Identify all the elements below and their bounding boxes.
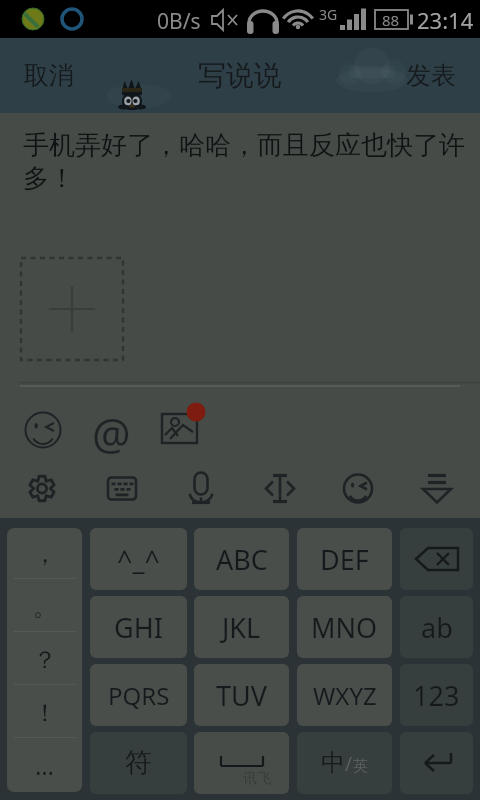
staticText: DEF (320, 541, 369, 578)
staticText: 0B/s (157, 7, 201, 36)
button[interactable]: Hide keyboard (407, 457, 467, 518)
button[interactable]: Voice input (171, 457, 231, 518)
button[interactable] (400, 528, 473, 590)
button[interactable]: ！ (7, 686, 82, 739)
staticText: ^_^ (117, 541, 160, 578)
staticText: PQRS (108, 679, 170, 712)
button[interactable]: PQRS (90, 664, 187, 726)
button[interactable]: JKL (194, 596, 289, 658)
button[interactable]: ab (400, 596, 473, 658)
staticText: 写说说 (198, 58, 282, 93)
button[interactable]: 讯飞 (194, 732, 289, 794)
button[interactable]: Emoji (328, 457, 388, 518)
button[interactable]: Emoji (18, 405, 68, 455)
button[interactable]: 发表 (382, 42, 480, 109)
button[interactable]: 中 (297, 732, 392, 794)
button[interactable]: ？ (7, 633, 82, 686)
button[interactable]: 取消 (0, 42, 98, 109)
staticText: 。 (33, 592, 57, 622)
button[interactable]: Add image (21, 258, 123, 360)
button[interactable] (400, 732, 473, 794)
staticText: 123 (413, 677, 460, 714)
staticText: ， (33, 539, 57, 569)
staticText: / (345, 751, 353, 777)
button[interactable]: DEF (297, 528, 392, 590)
button[interactable]: GHI (90, 596, 187, 658)
staticText: WXYZ (313, 679, 377, 712)
staticText: 中 (321, 748, 345, 778)
staticText: JKL (222, 609, 261, 646)
button[interactable]: TUV (194, 664, 289, 726)
button[interactable]: Add photo (155, 405, 205, 455)
button[interactable]: Settings (12, 457, 72, 518)
button[interactable]: Keyboard layout (92, 457, 152, 518)
button[interactable]: ， (7, 528, 82, 580)
staticText: ab (421, 609, 453, 646)
staticText: ！ (33, 698, 57, 728)
staticText: 23:14 (417, 5, 474, 35)
staticText: 88 (382, 10, 400, 30)
button[interactable]: MNO (297, 596, 392, 658)
staticText: TUV (216, 677, 267, 714)
button[interactable]: Move cursor (250, 457, 310, 518)
staticText: MNO (311, 609, 378, 646)
staticText: 英 (353, 757, 368, 776)
staticText: 讯飞 (243, 770, 271, 788)
staticText: 符 (125, 746, 152, 780)
button[interactable]: … (7, 739, 82, 792)
button[interactable]: 123 (400, 664, 473, 726)
button[interactable]: 符 (90, 732, 187, 794)
staticText: 取消 (24, 60, 74, 91)
button[interactable]: ABC (194, 528, 289, 590)
staticText: ？ (33, 645, 57, 675)
staticText: 手机弄好了，哈哈，而且反应也快了许多！ (23, 129, 480, 194)
staticText: @ (92, 404, 131, 454)
staticText: 发表 (406, 60, 456, 91)
staticText: … (35, 749, 54, 782)
button[interactable]: ^_^ (90, 528, 187, 590)
staticText: GHI (114, 609, 163, 646)
staticText: ABC (216, 541, 268, 578)
button[interactable]: WXYZ (297, 664, 392, 726)
button[interactable]: Mention someone (86, 405, 136, 455)
staticText: 3G (319, 5, 338, 24)
